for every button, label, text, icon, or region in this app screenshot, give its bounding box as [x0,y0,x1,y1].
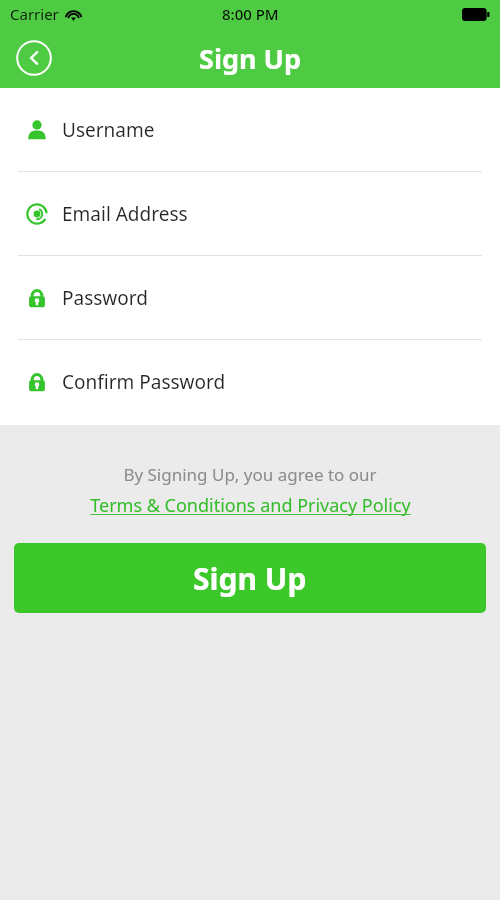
button[interactable]: Terms & Conditions and Privacy Policy [86,492,415,519]
staticText: Email Address [62,201,188,227]
staticText: 8:00 PM [222,4,279,24]
button[interactable]: Password [0,256,500,339]
staticText: Username [62,117,155,143]
button[interactable]: Confirm Password [0,340,500,423]
button[interactable]: Sign Up [14,543,486,613]
staticText: Confirm Password [62,369,226,395]
staticText: Password [62,285,148,311]
button[interactable]: Email Address [0,172,500,255]
staticText: Sign Up [193,558,307,599]
button[interactable]: Back [14,38,54,78]
staticText: Sign Up [199,40,302,77]
staticText: By Signing Up, you agree to our [0,463,500,486]
button[interactable]: Username [0,88,500,171]
staticText: Carrier [10,4,59,24]
